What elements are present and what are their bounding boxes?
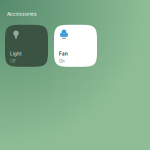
staticText: Light	[10, 51, 22, 57]
staticText: Off	[10, 59, 16, 64]
button[interactable]: Light	[5, 25, 48, 67]
button[interactable]: Fan	[54, 25, 97, 67]
staticText: On	[59, 59, 65, 64]
staticText: Fan	[59, 51, 68, 57]
staticText: Accessories	[7, 11, 37, 17]
